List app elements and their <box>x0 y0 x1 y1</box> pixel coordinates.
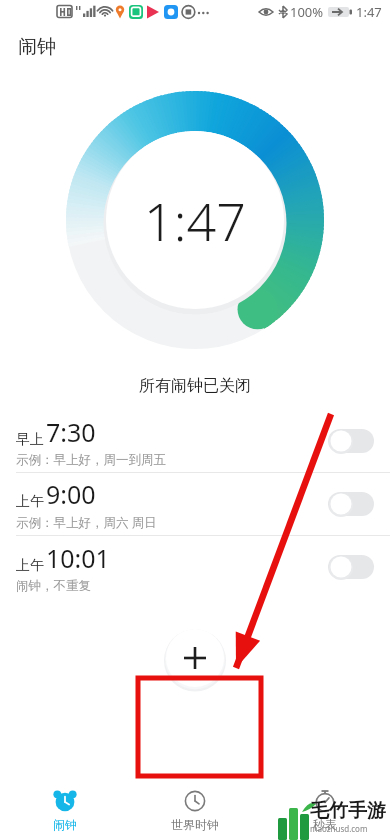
button[interactable]: Toggle alarm <box>328 555 374 579</box>
staticText: maozhusd.com <box>310 823 368 834</box>
staticText: 上午 <box>16 557 44 575</box>
button[interactable]: 秒表 <box>260 780 390 840</box>
staticText: 所有闹钟已关闭 <box>139 376 251 396</box>
staticText: 上午 <box>16 493 44 511</box>
staticText: 早上 <box>16 431 44 449</box>
staticText: 闹钟，不重复 <box>16 578 91 594</box>
staticText: 秒表 <box>313 817 337 832</box>
staticText: 9:00 <box>46 477 96 511</box>
staticText: 10:01 <box>46 541 110 575</box>
staticText: 闹钟 <box>18 35 56 59</box>
button[interactable]: 世界时钟 <box>130 780 260 840</box>
staticText: 示例：早上好，周一到周五 <box>16 452 166 468</box>
staticText: 1:47 <box>356 3 382 21</box>
staticText: 7:30 <box>46 415 96 449</box>
button[interactable]: Add alarm <box>164 627 226 689</box>
staticText: 毛竹手游 <box>310 799 386 823</box>
button[interactable]: Toggle alarm <box>328 492 374 516</box>
button[interactable]: 早上 <box>0 410 390 472</box>
button[interactable]: 闹钟 <box>0 780 130 840</box>
staticText: 世界时钟 <box>171 817 219 832</box>
staticText: 1:47 <box>144 185 246 256</box>
staticText: 示例：早上好，周六 周日 <box>16 514 157 531</box>
button[interactable]: 上午 <box>0 536 390 598</box>
staticText: 闹钟 <box>53 817 77 832</box>
button[interactable]: Toggle alarm <box>328 429 374 453</box>
button[interactable]: 上午 <box>0 473 390 535</box>
staticText: 100% <box>290 3 324 21</box>
